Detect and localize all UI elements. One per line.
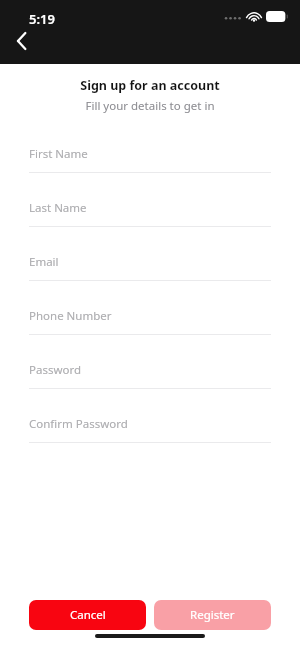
button[interactable]: Last Name xyxy=(29,189,271,226)
button[interactable]: Cancel xyxy=(29,600,146,630)
staticText: First Name xyxy=(29,146,88,162)
staticText: Phone Number xyxy=(29,308,112,324)
staticText: Sign up for an account xyxy=(0,77,300,94)
button[interactable]: Confirm Password xyxy=(29,405,271,442)
button[interactable]: Password xyxy=(29,351,271,388)
staticText: Cancel xyxy=(70,607,106,623)
button[interactable]: Phone Number xyxy=(29,297,271,334)
button[interactable]: Email xyxy=(29,243,271,280)
staticText: Last Name xyxy=(29,200,87,216)
staticText: 5:19 xyxy=(29,10,55,28)
staticText: Password xyxy=(29,362,82,378)
button[interactable]: First Name xyxy=(29,135,271,172)
staticText: Confirm Password xyxy=(29,416,128,432)
staticText: Fill your details to get in xyxy=(0,98,300,114)
button[interactable]: Register xyxy=(154,600,271,630)
button[interactable]: Back xyxy=(0,20,42,62)
staticText: Register xyxy=(190,607,235,623)
staticText: Email xyxy=(29,254,59,270)
